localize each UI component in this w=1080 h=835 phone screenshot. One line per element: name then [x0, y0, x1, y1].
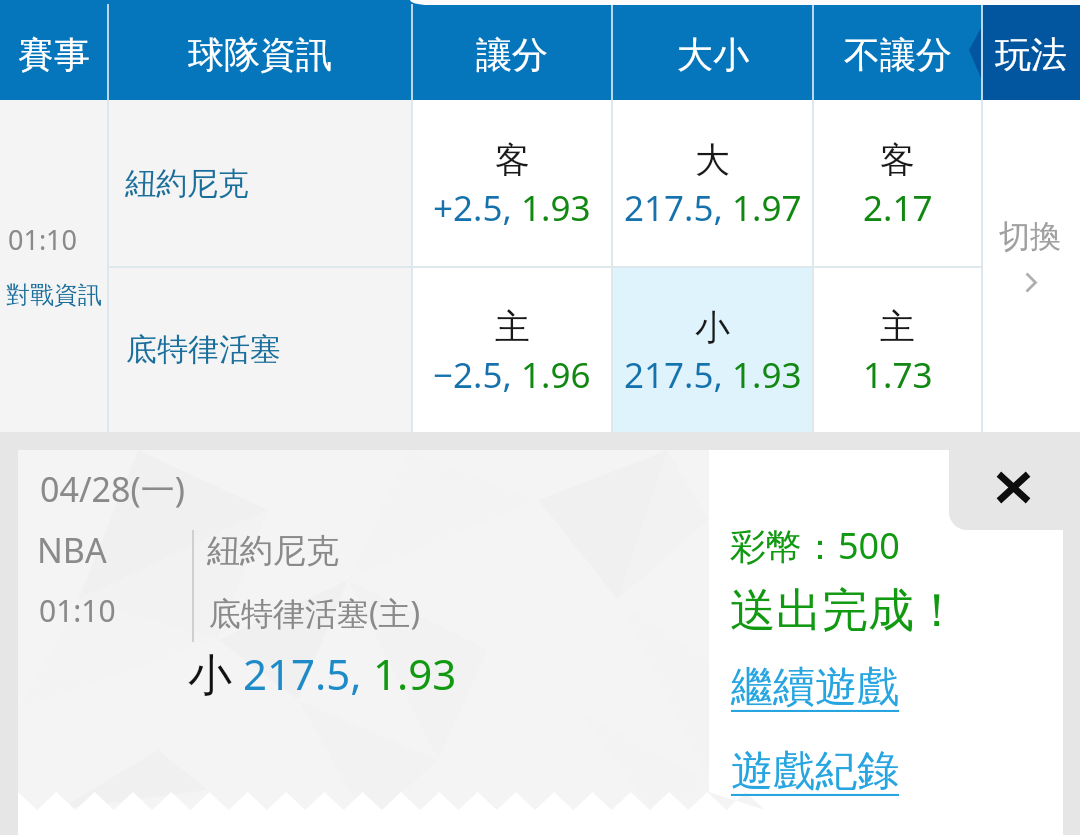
staticText: 小 [188, 648, 232, 703]
staticText: 彩幣：500 [730, 521, 900, 570]
button[interactable]: 對戰資訊 [6, 280, 102, 310]
staticText: 小 [695, 305, 730, 349]
staticText: 切換 [999, 217, 1061, 256]
staticText: 01:10 [39, 590, 116, 631]
staticText: 客 [880, 138, 915, 182]
staticText: 1.96 [521, 351, 591, 399]
staticText: 1.93 [521, 184, 591, 232]
staticText: NBA [37, 527, 107, 573]
button[interactable]: 主 [813, 267, 982, 432]
staticText: 對戰資訊 [6, 280, 102, 310]
staticText: 大 [695, 138, 730, 182]
staticText: 主 [880, 305, 915, 349]
staticText: 1.73 [863, 351, 933, 399]
staticText: 讓分 [476, 32, 548, 77]
staticText: 217.5, [624, 184, 732, 232]
button[interactable]: 遊戲紀錄 [731, 745, 899, 798]
staticText: 玩法 [995, 32, 1067, 77]
button[interactable]: 不讓分 [813, 0, 982, 100]
button[interactable]: 客 [412, 100, 612, 267]
button[interactable]: 大 [612, 100, 813, 267]
staticText: 底特律活塞(主) [209, 591, 421, 635]
button[interactable]: 主 [412, 267, 612, 432]
button[interactable]: 切換 [982, 100, 1080, 432]
staticText: 賽事 [18, 32, 90, 77]
staticText: +2.5, [433, 184, 521, 232]
staticText: 底特律活塞 [126, 330, 281, 369]
button[interactable]: 球隊資訊 [108, 0, 412, 100]
staticText: 球隊資訊 [188, 32, 332, 77]
staticText: 217.5, [243, 645, 373, 702]
staticText: 主 [495, 305, 530, 349]
staticText: 客 [495, 138, 530, 182]
button[interactable]: 繼續遊戲 [731, 661, 899, 714]
staticText: 遊戲紀錄 [731, 745, 899, 798]
staticText: 紐約尼克 [125, 164, 249, 203]
staticText: 2.17 [863, 184, 933, 232]
staticText: 01:10 [8, 221, 78, 258]
button[interactable]: 客 [813, 100, 982, 267]
button[interactable]: 底特律活塞 [108, 267, 412, 432]
staticText: 1.97 [732, 184, 802, 232]
staticText: 送出完成！ [730, 582, 960, 640]
staticText: 不讓分 [844, 32, 952, 77]
button[interactable]: 大小 [612, 0, 813, 100]
button[interactable]: 讓分 [412, 0, 612, 100]
staticText: 1.93 [373, 645, 457, 702]
button[interactable]: 小 [612, 267, 813, 432]
staticText: −2.5, [433, 351, 521, 399]
button[interactable]: 賽事 [0, 0, 108, 100]
staticText: 04/28(一) [40, 466, 185, 512]
button[interactable]: 玩法 [982, 0, 1080, 100]
button[interactable]: Close [949, 432, 1063, 530]
staticText: 大小 [677, 32, 749, 77]
staticText: 1.93 [732, 351, 802, 399]
staticText: 紐約尼克 [207, 530, 339, 572]
button[interactable]: 紐約尼克 [108, 100, 412, 267]
staticText: 217.5, [624, 351, 732, 399]
staticText: 繼續遊戲 [731, 661, 899, 714]
